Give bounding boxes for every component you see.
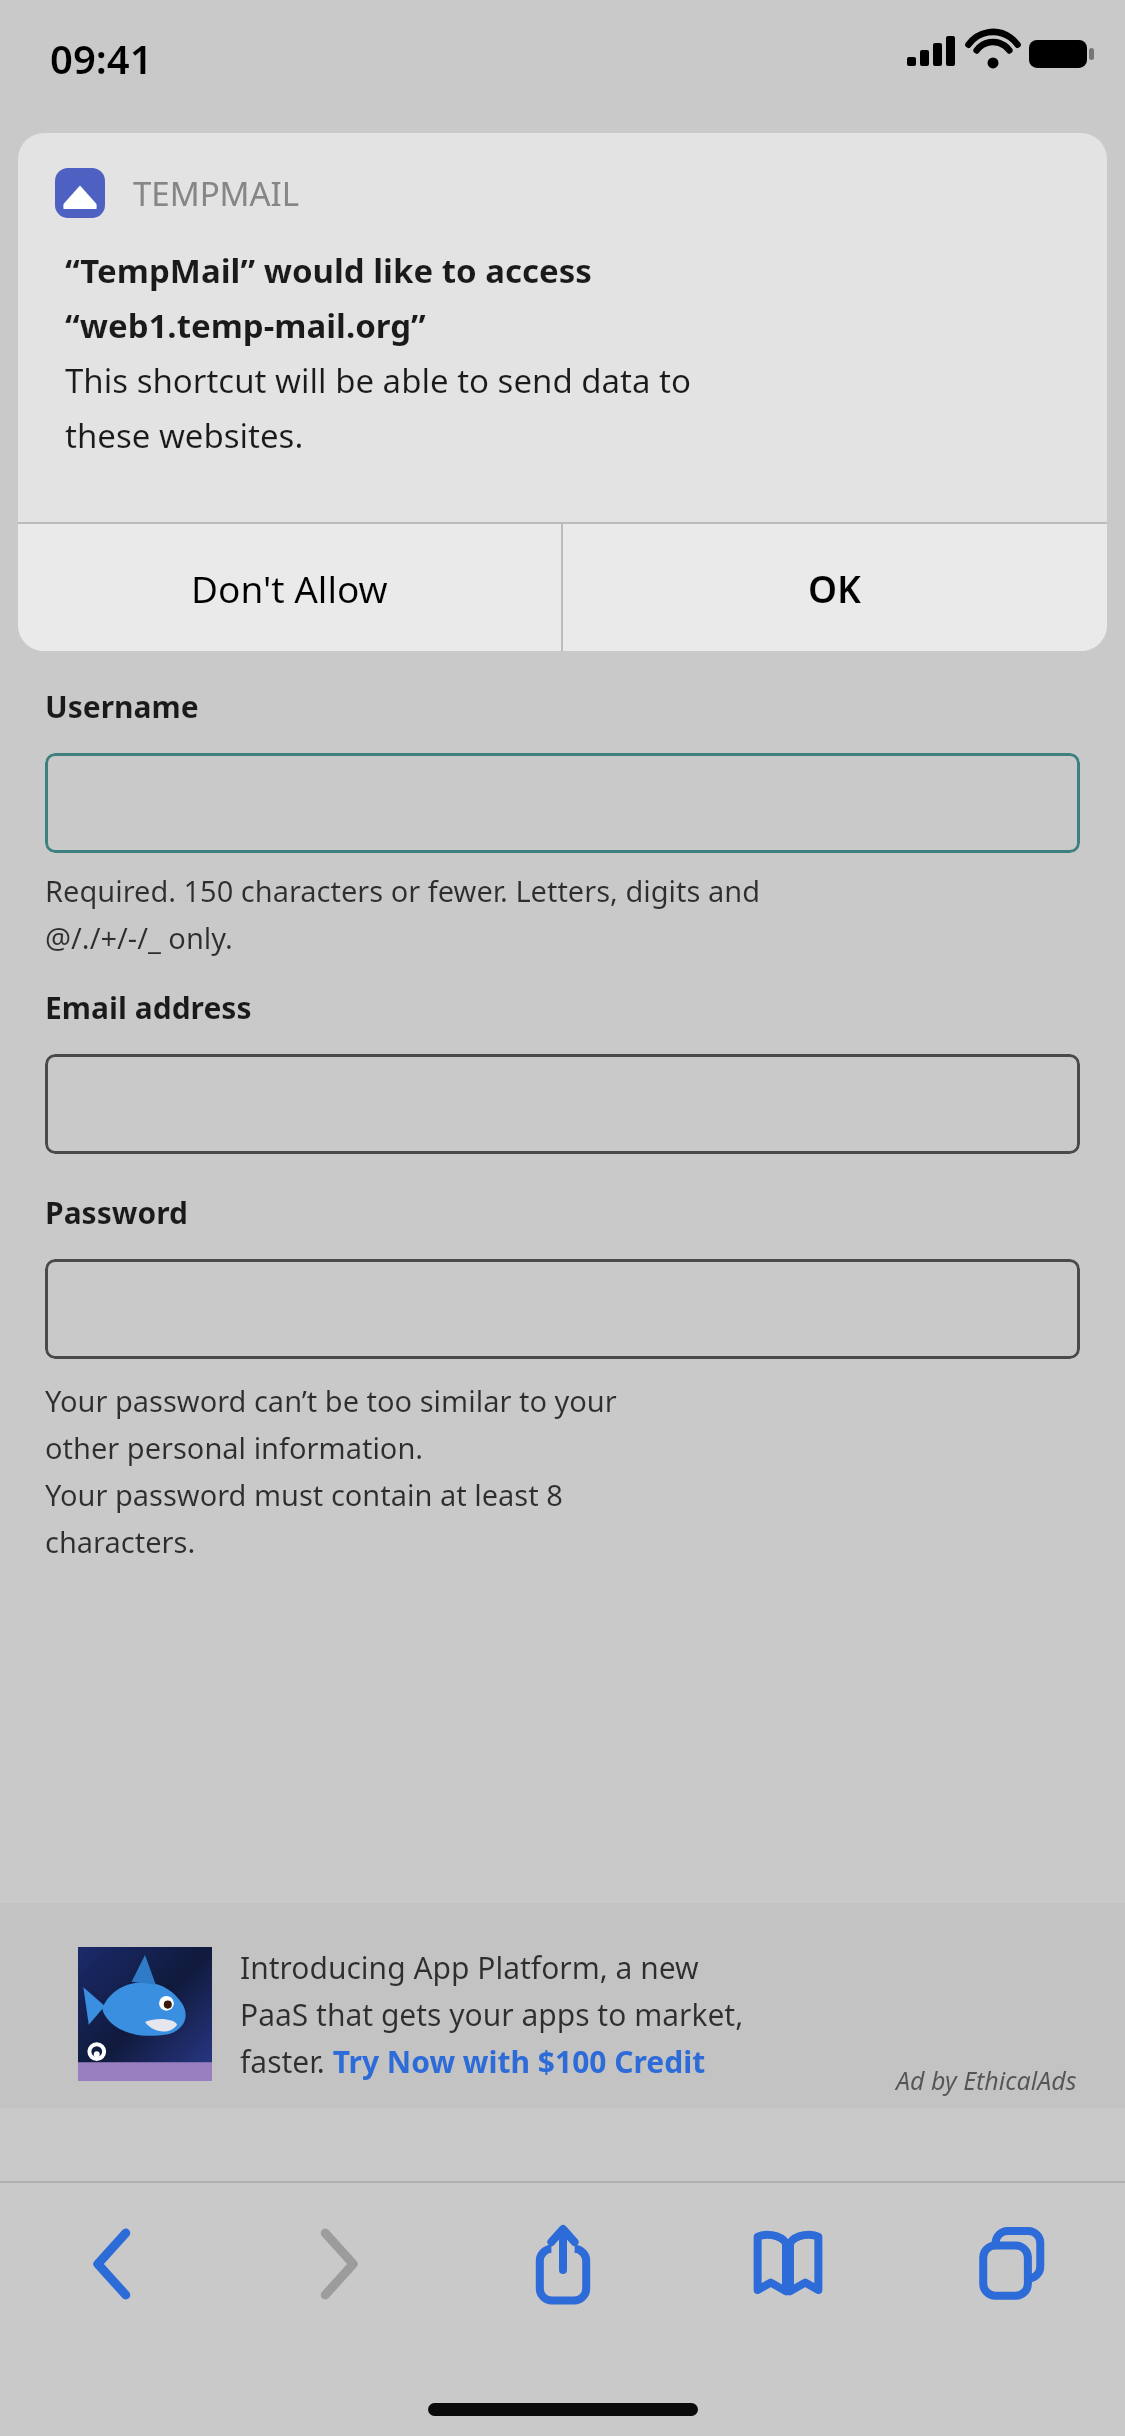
staticText: 09:41 xyxy=(50,31,153,85)
button[interactable]: Introducing App Platform, a new PaaS tha… xyxy=(0,1903,1125,2108)
button[interactable] xyxy=(45,753,1080,853)
button[interactable]: Tabs xyxy=(900,2181,1125,2346)
button[interactable]: OK xyxy=(563,524,1107,651)
staticText: “TempMail” would like to access “web1.te… xyxy=(65,248,691,458)
button[interactable]: Share xyxy=(450,2181,675,2346)
staticText: Password xyxy=(45,1192,188,1233)
staticText: Your password can’t be too similar to yo… xyxy=(45,1381,617,1561)
staticText: TEMPMAIL xyxy=(133,171,300,216)
button[interactable]: Bookmarks xyxy=(675,2181,900,2346)
staticText: OK xyxy=(808,563,862,613)
staticText: Introducing App Platform, a new PaaS tha… xyxy=(240,1947,744,2082)
staticText: Don't Allow xyxy=(191,563,388,613)
button[interactable]: Forward xyxy=(225,2181,450,2346)
button[interactable] xyxy=(45,1054,1080,1154)
staticText: Required. 150 characters or fewer. Lette… xyxy=(45,871,760,957)
staticText: Username xyxy=(45,686,199,727)
button[interactable]: Back xyxy=(0,2181,225,2346)
staticText: Email address xyxy=(45,987,252,1028)
button[interactable]: Don't Allow xyxy=(18,524,561,651)
staticText: Register xyxy=(45,558,270,632)
button[interactable] xyxy=(45,1259,1080,1359)
staticText: Ad by EthicalAds xyxy=(896,2063,1077,2097)
